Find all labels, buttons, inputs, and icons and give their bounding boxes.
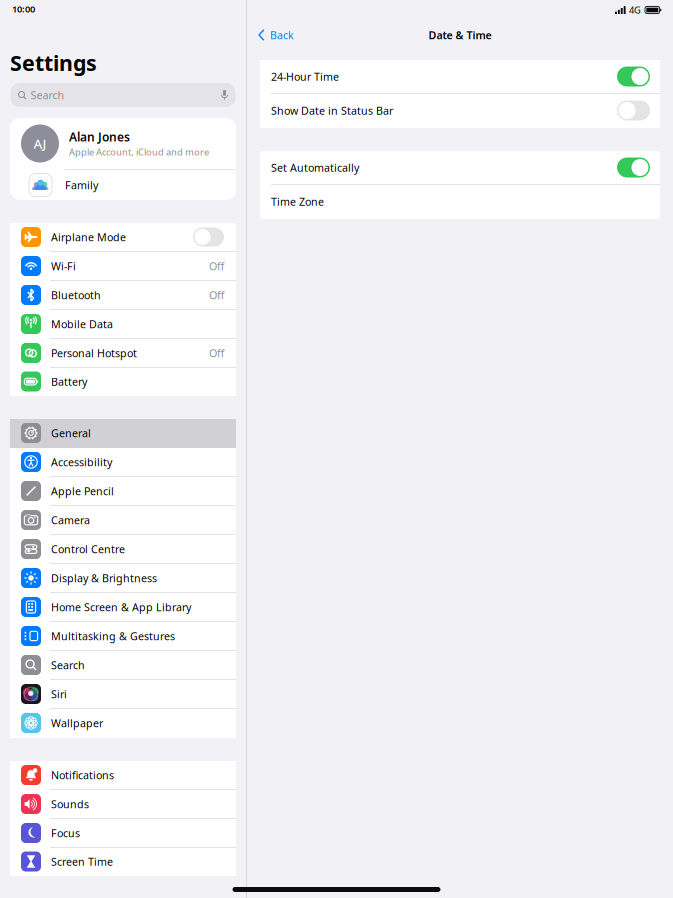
staticText: Set Automatically [271, 160, 359, 175]
staticText: Home Screen & App Library [51, 600, 191, 614]
button[interactable]: Apple Pencil [10, 477, 236, 506]
staticText: Battery [51, 374, 87, 389]
staticText: Airplane Mode [51, 230, 126, 244]
staticText: General [51, 426, 91, 440]
staticText: 4G [629, 4, 641, 16]
staticText: Apple Pencil [51, 484, 114, 498]
button[interactable]: Focus [10, 819, 236, 848]
staticText: Bluetooth [51, 288, 101, 302]
button[interactable]: Wi-Fi [10, 252, 236, 281]
staticText: Off [209, 346, 224, 360]
staticText: Date & Time [428, 28, 491, 42]
button[interactable]: Set Automatically [260, 151, 660, 185]
button[interactable]: Time Zone [260, 185, 660, 219]
button[interactable]: Show Date in Status Bar [260, 94, 660, 128]
staticText: Siri [51, 687, 67, 701]
button[interactable]: Siri [10, 680, 236, 709]
staticText: Personal Hotspot [51, 346, 137, 360]
staticText: Wi-Fi [51, 259, 76, 273]
staticText: AJ [33, 135, 46, 152]
staticText: Search [30, 88, 64, 102]
button[interactable]: Screen Time [10, 848, 236, 876]
staticText: Back [270, 28, 294, 42]
button[interactable]: Personal Hotspot [10, 339, 236, 368]
button[interactable]: Search [10, 651, 236, 680]
button[interactable]: Mobile Data [10, 310, 236, 339]
staticText: Alan Jones [69, 129, 130, 145]
button[interactable]: Multitasking & Gestures [10, 622, 236, 651]
staticText: Sounds [51, 797, 89, 811]
staticText: Multitasking & Gestures [51, 629, 175, 643]
button[interactable]: Accessibility [10, 448, 236, 477]
staticText: Off [209, 259, 224, 273]
staticText: Settings [10, 49, 97, 77]
button[interactable]: Search [10, 83, 235, 107]
staticText: Control Centre [51, 542, 125, 556]
button[interactable]: Display & Brightness [10, 564, 236, 593]
staticText: Screen Time [51, 854, 113, 869]
staticText: Notifications [51, 768, 114, 782]
staticText: Apple Account, iCloud and more [69, 146, 209, 158]
button[interactable]: Notifications [10, 761, 236, 790]
staticText: Wallpaper [51, 716, 103, 730]
staticText: Accessibility [51, 455, 112, 469]
button[interactable]: Camera [10, 506, 236, 535]
staticText: Off [209, 288, 224, 302]
staticText: Show Date in Status Bar [271, 103, 393, 118]
button[interactable]: Back [247, 23, 302, 47]
staticText: Mobile Data [51, 317, 113, 331]
button[interactable]: Battery [10, 368, 236, 396]
staticText: Focus [51, 826, 80, 840]
staticText: Display & Brightness [51, 571, 157, 585]
button[interactable]: 24-Hour Time [260, 60, 660, 94]
button[interactable]: Airplane Mode [10, 223, 236, 252]
staticText: Camera [51, 513, 90, 527]
button[interactable]: Bluetooth [10, 281, 236, 310]
staticText: 24-Hour Time [271, 69, 339, 84]
button[interactable]: Control Centre [10, 535, 236, 564]
button[interactable]: Wallpaper [10, 709, 236, 738]
button[interactable]: Sounds [10, 790, 236, 819]
staticText: 10:00 [12, 3, 35, 15]
button[interactable]: Home Screen & App Library [10, 593, 236, 622]
staticText: Search [51, 658, 85, 672]
staticText: Time Zone [271, 194, 324, 209]
staticText: Family [65, 178, 98, 192]
button[interactable]: General [10, 419, 236, 448]
